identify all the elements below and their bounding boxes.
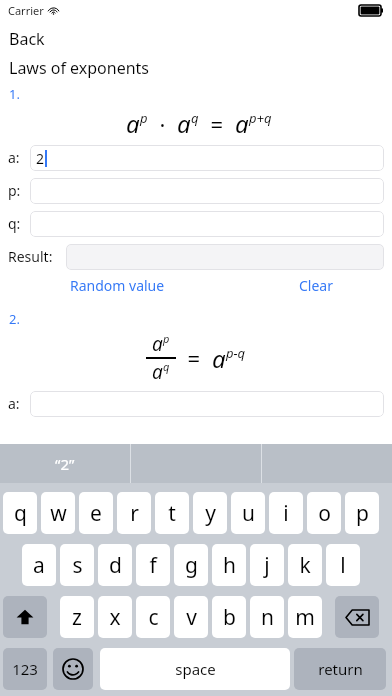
staticText: h <box>223 551 236 580</box>
button[interactable]: u <box>231 492 265 534</box>
button[interactable] <box>30 211 384 237</box>
button[interactable]: return <box>294 648 386 690</box>
staticText: e <box>90 499 102 528</box>
button[interactable]: Random value <box>66 272 169 299</box>
staticText: c <box>148 603 159 632</box>
staticText: q <box>14 499 27 528</box>
button[interactable]: d <box>98 544 132 586</box>
staticText: Clear <box>299 276 333 295</box>
staticText: · <box>148 109 177 139</box>
button[interactable]: t <box>155 492 189 534</box>
staticText: p <box>163 331 170 346</box>
staticText: a: <box>8 148 30 167</box>
staticText: i <box>283 499 289 528</box>
staticText: a <box>152 331 163 357</box>
staticText: return <box>318 659 363 679</box>
staticText: s <box>72 551 83 580</box>
staticText: g <box>185 551 198 580</box>
staticText: r <box>130 499 139 528</box>
staticText: d <box>109 551 122 580</box>
button[interactable] <box>30 178 384 204</box>
staticText: t <box>168 499 176 528</box>
staticText: Result: <box>8 247 66 266</box>
button[interactable]: e <box>79 492 113 534</box>
button[interactable]: l <box>326 544 360 586</box>
staticText: p+q <box>249 109 272 127</box>
button[interactable]: z <box>60 596 94 638</box>
button[interactable]: 2 <box>30 145 384 171</box>
button[interactable]: o <box>307 492 341 534</box>
staticText: l <box>340 551 346 580</box>
staticText: q <box>191 109 199 127</box>
button[interactable]: j <box>250 544 284 586</box>
staticText: q: <box>8 214 30 233</box>
button[interactable]: 123 <box>3 648 47 690</box>
staticText: o <box>318 499 331 528</box>
staticText: v <box>186 603 197 632</box>
button[interactable]: c <box>136 596 170 638</box>
button[interactable]: w <box>41 492 75 534</box>
button[interactable] <box>66 244 384 270</box>
staticText: 2 <box>36 149 45 168</box>
staticText: Random value <box>70 276 165 295</box>
button[interactable]: x <box>98 596 132 638</box>
staticText: p: <box>8 181 30 200</box>
staticText: q <box>163 359 170 374</box>
staticText: w <box>50 499 67 528</box>
staticText: a <box>177 107 191 140</box>
button[interactable]: g <box>174 544 208 586</box>
button[interactable]: r <box>117 492 151 534</box>
staticText: space <box>175 659 216 679</box>
button[interactable]: y <box>193 492 227 534</box>
button[interactable]: Emoji <box>53 648 93 690</box>
staticText: “2” <box>55 454 75 474</box>
button[interactable]: k <box>288 544 322 586</box>
button[interactable] <box>30 391 384 417</box>
staticText: y <box>205 499 216 528</box>
staticText: u <box>242 499 255 528</box>
staticText: j <box>264 551 270 580</box>
staticText: p <box>140 109 148 127</box>
staticText: k <box>299 551 311 580</box>
button[interactable]: f <box>136 544 170 586</box>
staticText: = <box>199 109 235 139</box>
staticText: a <box>152 359 163 385</box>
button[interactable]: “2” <box>0 444 130 483</box>
staticText: = <box>176 343 212 373</box>
button[interactable]: q <box>3 492 37 534</box>
button[interactable]: i <box>269 492 303 534</box>
staticText: 1. <box>9 85 20 103</box>
staticText: b <box>223 603 236 632</box>
button[interactable]: s <box>60 544 94 586</box>
button[interactable]: space <box>100 648 290 690</box>
button[interactable]: Backspace <box>335 596 379 638</box>
staticText: a <box>126 107 140 140</box>
button[interactable]: Clear <box>295 272 337 299</box>
button[interactable]: a <box>22 544 56 586</box>
staticText: a <box>212 342 226 375</box>
staticText: f <box>149 551 157 580</box>
button[interactable]: p <box>345 492 379 534</box>
staticText: z <box>72 603 82 632</box>
button[interactable]: Shift <box>3 596 47 638</box>
staticText: 123 <box>12 659 38 679</box>
staticText: Carrier <box>8 3 44 18</box>
staticText: m <box>295 603 315 632</box>
staticText: a <box>235 107 249 140</box>
button[interactable]: h <box>212 544 246 586</box>
staticText: n <box>261 603 274 632</box>
button[interactable]: v <box>174 596 208 638</box>
button[interactable]: n <box>250 596 284 638</box>
staticText: a <box>33 551 45 580</box>
button[interactable]: m <box>288 596 322 638</box>
staticText: 2. <box>9 310 20 328</box>
button[interactable]: b <box>212 596 246 638</box>
staticText: p <box>356 499 369 528</box>
button[interactable]: Back <box>9 28 45 50</box>
staticText: a: <box>8 394 30 413</box>
staticText: p−q <box>226 344 246 362</box>
staticText: x <box>109 603 121 632</box>
staticText: Laws of exponents <box>9 57 150 79</box>
